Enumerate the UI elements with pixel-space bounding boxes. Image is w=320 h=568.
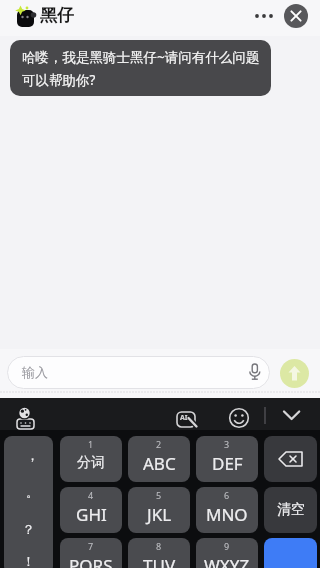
button[interactable]: 哈喽，我是黑骑士黑仔~请问有什么问题 可以帮助你? bbox=[10, 40, 271, 96]
staticText: 。 bbox=[26, 484, 39, 500]
staticText: ABC bbox=[143, 452, 176, 475]
button[interactable]: 7 bbox=[60, 538, 122, 568]
staticText: 黑仔 bbox=[40, 5, 74, 26]
staticText: 2 bbox=[156, 438, 162, 450]
staticText: 7 bbox=[88, 540, 94, 552]
staticText: 3 bbox=[224, 438, 230, 450]
staticText: ！ bbox=[22, 553, 35, 568]
button[interactable] bbox=[264, 538, 317, 568]
button[interactable] bbox=[250, 6, 278, 28]
staticText: 5 bbox=[156, 489, 162, 501]
staticText: 输入 bbox=[22, 364, 48, 380]
staticText: 4 bbox=[88, 489, 94, 501]
staticText: PQRS bbox=[69, 554, 113, 568]
staticText: ？ bbox=[22, 521, 35, 537]
button[interactable]: 9 bbox=[196, 538, 258, 568]
button[interactable]: 1 bbox=[60, 436, 122, 482]
staticText: 分词 bbox=[77, 454, 105, 472]
button[interactable] bbox=[227, 406, 251, 430]
button[interactable] bbox=[264, 436, 317, 482]
button[interactable]: 清空 bbox=[264, 487, 317, 533]
button[interactable] bbox=[17, 8, 36, 27]
button[interactable] bbox=[280, 359, 309, 388]
button[interactable] bbox=[276, 404, 308, 428]
button[interactable]: 输入 bbox=[7, 356, 270, 389]
staticText: ， bbox=[26, 447, 39, 463]
staticText: 1 bbox=[88, 438, 94, 450]
button[interactable] bbox=[13, 400, 39, 430]
button[interactable]: 5 bbox=[128, 487, 190, 533]
button[interactable]: ， bbox=[4, 436, 53, 568]
staticText: JKL bbox=[147, 503, 172, 526]
button[interactable] bbox=[173, 404, 199, 430]
button[interactable] bbox=[284, 4, 308, 28]
staticText: DEF bbox=[212, 452, 243, 475]
staticText: 9 bbox=[224, 540, 230, 552]
button[interactable]: 2 bbox=[128, 436, 190, 482]
button[interactable]: 6 bbox=[196, 487, 258, 533]
button[interactable]: 8 bbox=[128, 538, 190, 568]
staticText: 6 bbox=[224, 489, 230, 501]
staticText: MNO bbox=[206, 503, 248, 526]
staticText: GHI bbox=[76, 503, 107, 526]
staticText: WXYZ bbox=[204, 554, 250, 568]
staticText: 8 bbox=[156, 540, 162, 552]
button[interactable]: 3 bbox=[196, 436, 258, 482]
staticText: TUV bbox=[143, 554, 176, 568]
staticText: 哈喽，我是黑骑士黑仔~请问有什么问题 可以帮助你? bbox=[22, 48, 260, 89]
staticText: 清空 bbox=[277, 501, 305, 519]
staticText: AI bbox=[180, 413, 188, 423]
button[interactable]: 4 bbox=[60, 487, 122, 533]
